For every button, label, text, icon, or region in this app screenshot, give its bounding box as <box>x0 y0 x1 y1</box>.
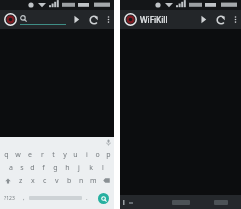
button[interactable]: p <box>103 148 114 161</box>
button[interactable]: More options <box>102 11 114 28</box>
staticText: w <box>15 150 21 160</box>
staticText: x <box>31 176 35 186</box>
button[interactable]: a <box>5 161 16 174</box>
staticText: r <box>41 150 44 160</box>
button[interactable]: Voice input <box>102 137 114 148</box>
button[interactable]: l <box>97 161 109 174</box>
staticText: , <box>23 194 25 202</box>
button[interactable]: r <box>36 148 48 161</box>
staticText: g <box>53 163 58 173</box>
staticText: q <box>4 150 9 160</box>
button[interactable]: z <box>15 174 27 187</box>
button[interactable]: c <box>39 174 51 187</box>
button[interactable]: Shift <box>0 174 15 187</box>
staticText: a <box>9 163 13 173</box>
button[interactable]: u <box>70 148 81 161</box>
button[interactable]: k <box>85 161 97 174</box>
staticText: l <box>102 163 104 173</box>
staticText: . <box>86 194 88 202</box>
button[interactable]: Recents <box>201 195 241 209</box>
button[interactable]: Start <box>195 11 212 28</box>
button[interactable]: t <box>48 148 59 161</box>
button[interactable]: Refresh <box>212 11 229 28</box>
button[interactable]: Backspace <box>99 174 114 187</box>
staticText: n <box>79 176 84 186</box>
staticText: o <box>95 150 100 160</box>
button[interactable]: Start <box>68 11 85 28</box>
button[interactable]: m <box>87 174 99 187</box>
staticText: ?123 <box>4 195 15 202</box>
button[interactable]: x <box>27 174 39 187</box>
staticText: j <box>78 163 80 173</box>
staticText: c <box>43 176 47 186</box>
button[interactable]: g <box>49 161 61 174</box>
button[interactable]: Refresh <box>85 11 102 28</box>
staticText: z <box>19 176 23 186</box>
button[interactable]: s <box>16 161 27 174</box>
staticText: d <box>30 163 35 173</box>
staticText: WiFiKill <box>140 14 195 25</box>
staticText: m <box>90 176 97 186</box>
button[interactable]: i <box>81 148 92 161</box>
button[interactable]: w <box>12 148 24 161</box>
staticText: i <box>86 150 88 160</box>
button[interactable]: Home <box>161 195 201 209</box>
button[interactable]: f <box>38 161 49 174</box>
button[interactable]: ?123 <box>0 187 19 209</box>
button[interactable]: q <box>0 148 12 161</box>
button[interactable]: j <box>73 161 85 174</box>
staticText: b <box>67 176 72 186</box>
button[interactable]: e <box>24 148 36 161</box>
button[interactable]: o <box>92 148 103 161</box>
staticText: h <box>65 163 70 173</box>
button[interactable]: App logo <box>0 10 20 29</box>
button[interactable]: b <box>63 174 75 187</box>
button[interactable]: d <box>27 161 38 174</box>
button[interactable]: y <box>59 148 70 161</box>
button[interactable]: App logo <box>120 10 140 29</box>
button[interactable] <box>20 10 66 29</box>
button[interactable]: , <box>19 187 29 209</box>
button[interactable]: Search <box>92 187 114 209</box>
staticText: v <box>55 176 59 186</box>
button[interactable]: n <box>75 174 87 187</box>
staticText: u <box>73 150 78 160</box>
button[interactable]: Space <box>29 191 82 205</box>
staticText: y <box>63 150 67 160</box>
staticText: p <box>106 150 111 160</box>
button[interactable]: More options <box>229 11 241 28</box>
staticText: k <box>89 163 93 173</box>
button[interactable]: v <box>51 174 63 187</box>
staticText: t <box>52 150 55 160</box>
button[interactable]: h <box>61 161 73 174</box>
button[interactable]: Back <box>120 195 161 209</box>
staticText: s <box>20 163 24 173</box>
staticText: f <box>42 163 45 173</box>
staticText: e <box>28 150 32 160</box>
